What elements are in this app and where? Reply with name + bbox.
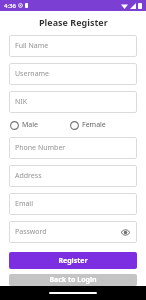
button[interactable]: Username xyxy=(9,63,137,85)
staticText: Please Register xyxy=(39,16,108,28)
staticText: Username xyxy=(15,69,50,79)
staticText: Male xyxy=(22,120,39,130)
staticText: 4:36 xyxy=(4,2,16,10)
button[interactable]: Back to Login xyxy=(9,274,137,286)
staticText: Password xyxy=(15,227,47,237)
button[interactable]: Toggle password visibility xyxy=(119,226,131,238)
button[interactable]: Full Name xyxy=(9,35,137,57)
staticText: Female xyxy=(82,120,106,130)
button[interactable]: Address xyxy=(9,165,137,187)
staticText: Register xyxy=(58,256,88,266)
button[interactable]: Male xyxy=(9,118,40,132)
staticText: Back to Login xyxy=(49,275,97,285)
staticText: Address xyxy=(15,171,42,181)
button[interactable]: NIK xyxy=(9,91,137,113)
button[interactable]: Register xyxy=(9,252,137,269)
staticText: Full Name xyxy=(15,41,49,51)
staticText: NIK xyxy=(15,97,28,107)
staticText: Phone Number xyxy=(15,143,66,153)
staticText: Email xyxy=(15,199,33,209)
button[interactable]: Password xyxy=(9,221,137,243)
button[interactable]: Email xyxy=(9,193,137,215)
button[interactable]: Female xyxy=(69,118,107,132)
button[interactable]: Phone Number xyxy=(9,137,137,159)
